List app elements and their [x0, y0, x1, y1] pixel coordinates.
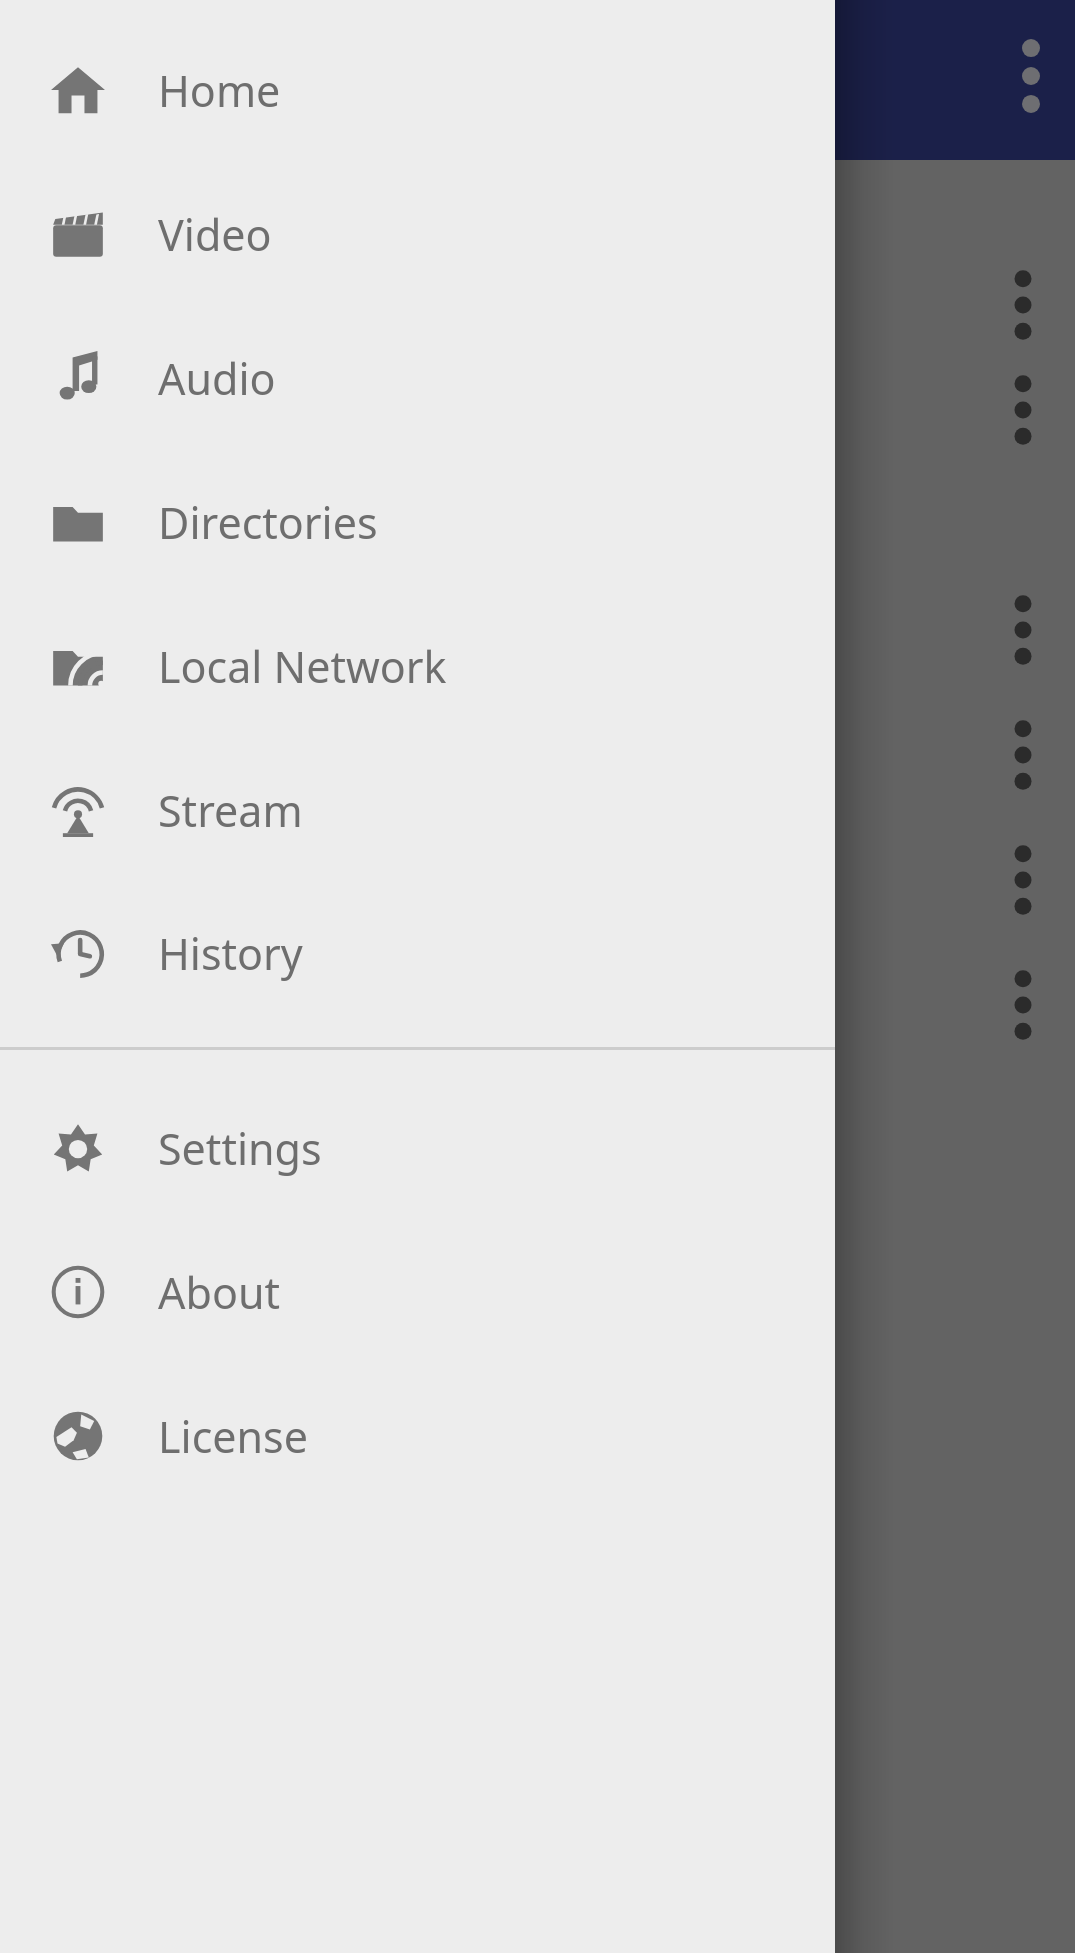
staticText: About — [158, 1263, 281, 1322]
button[interactable]: About — [0, 1220, 835, 1364]
staticText: Stream — [158, 781, 303, 840]
button[interactable]: Stream — [0, 738, 835, 882]
button[interactable]: Directories — [0, 450, 835, 594]
staticText: History — [158, 924, 303, 983]
button[interactable]: Local Network — [0, 594, 835, 738]
staticText: Settings — [158, 1119, 322, 1178]
button[interactable]: Video — [0, 162, 835, 306]
button[interactable]: More options — [987, 969, 1059, 1041]
button[interactable]: More options — [987, 719, 1059, 791]
button[interactable]: More options — [987, 374, 1059, 446]
button[interactable]: License — [0, 1364, 835, 1508]
button[interactable]: Settings — [0, 1076, 835, 1220]
staticText: Local Network — [158, 637, 447, 696]
button[interactable]: More options — [995, 40, 1067, 112]
staticText: Home — [158, 61, 281, 120]
button[interactable]: More options — [987, 269, 1059, 341]
button[interactable]: More options — [987, 844, 1059, 916]
staticText: Video — [158, 205, 272, 264]
staticText: License — [158, 1407, 308, 1466]
staticText: Directories — [158, 493, 378, 552]
button[interactable]: More options — [987, 594, 1059, 666]
button[interactable]: Audio — [0, 306, 835, 450]
staticText: Audio — [158, 349, 276, 408]
button[interactable]: History — [0, 881, 835, 1025]
button[interactable]: Home — [0, 18, 835, 162]
